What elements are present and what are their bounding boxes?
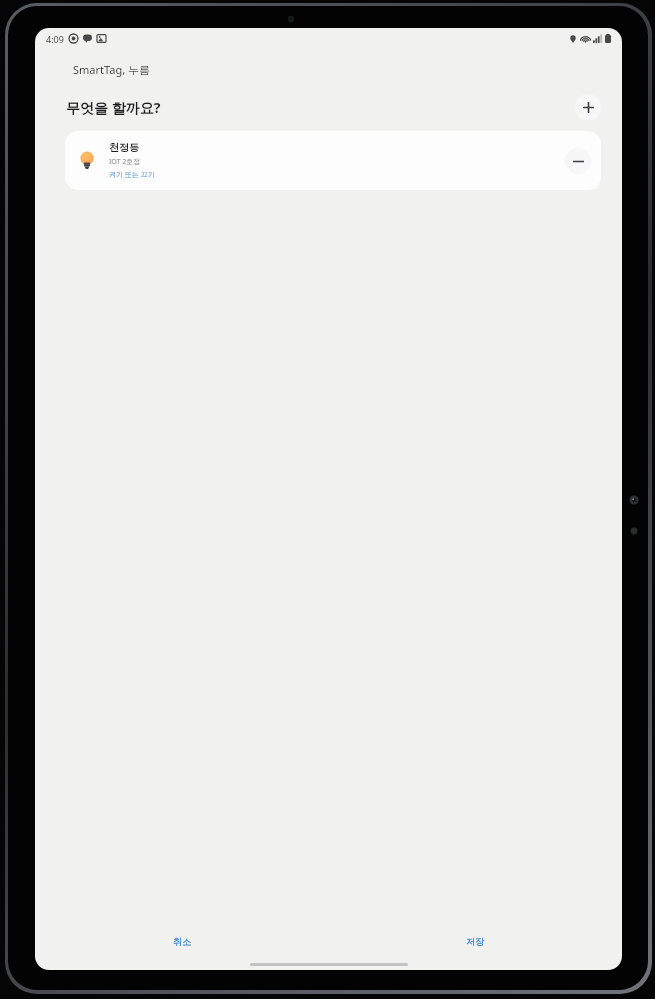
staticText: 저장 bbox=[466, 936, 484, 947]
staticText: SmartTag, 누름 bbox=[73, 62, 150, 77]
staticText: IOT 2호점 bbox=[109, 157, 141, 167]
button[interactable]: Add action bbox=[575, 94, 601, 120]
button[interactable]: 취소 bbox=[159, 931, 205, 952]
button[interactable]: 천정등 bbox=[65, 131, 601, 190]
button[interactable]: Remove action bbox=[565, 148, 591, 174]
staticText: 켜기 또는 끄기 bbox=[109, 170, 155, 180]
staticText: 취소 bbox=[173, 936, 191, 947]
button[interactable]: 저장 bbox=[452, 931, 498, 952]
staticText: 천정등 bbox=[109, 141, 139, 154]
staticText: 4:09 bbox=[46, 33, 64, 45]
staticText: 무엇을 할까요? bbox=[66, 98, 161, 117]
